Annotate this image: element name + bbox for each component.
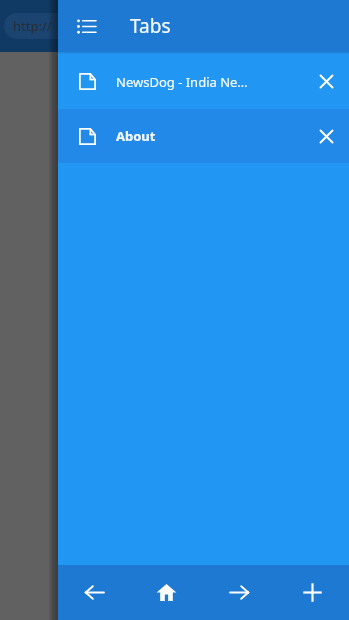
staticText: http:// (13, 17, 52, 35)
staticText: NewsDog - India Ne… (116, 73, 304, 91)
button[interactable]: http:// (4, 13, 74, 39)
button[interactable]: Forward (203, 565, 276, 620)
button[interactable]: Close tab About (304, 109, 349, 163)
staticText: About (116, 127, 304, 145)
button[interactable]: Back (58, 565, 130, 620)
button[interactable]: New tab (276, 565, 349, 620)
button[interactable]: About (58, 109, 349, 163)
button[interactable]: NewsDog - India Ne… (58, 54, 349, 109)
staticText: Tabs (130, 13, 171, 39)
button[interactable]: Close tab NewsDog - India Ne… (304, 54, 349, 109)
button[interactable]: Open tab list menu (64, 4, 108, 48)
button[interactable]: Home (130, 565, 203, 620)
